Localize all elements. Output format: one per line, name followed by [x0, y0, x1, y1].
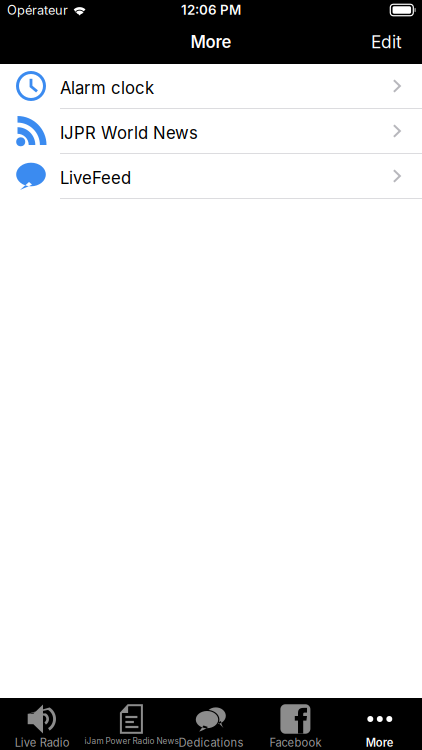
button[interactable]: Dedications — [169, 698, 253, 750]
staticText: LiveFeed — [60, 168, 131, 188]
staticText: More — [366, 736, 394, 750]
button[interactable]: More — [338, 698, 422, 750]
button[interactable]: LiveFeed — [0, 154, 422, 199]
staticText: Facebook — [269, 736, 321, 750]
button[interactable]: Edit — [361, 22, 412, 61]
staticText: Edit — [371, 31, 402, 52]
staticText: Live Radio — [15, 736, 70, 750]
button[interactable]: Alarm clock — [0, 64, 422, 109]
button[interactable]: IJPR World News — [0, 109, 422, 154]
staticText: iJam Power Radio News — [84, 736, 178, 746]
staticText: 12:06 PM — [181, 2, 241, 18]
button[interactable]: Facebook — [253, 698, 338, 750]
staticText: IJPR World News — [60, 123, 198, 143]
staticText: Dedications — [178, 736, 243, 750]
staticText: Opérateur — [7, 2, 68, 18]
button[interactable]: iJam Power Radio News — [84, 698, 169, 750]
staticText: Alarm clock — [60, 78, 154, 98]
button[interactable]: Live Radio — [0, 698, 84, 750]
staticText: More — [190, 32, 231, 52]
